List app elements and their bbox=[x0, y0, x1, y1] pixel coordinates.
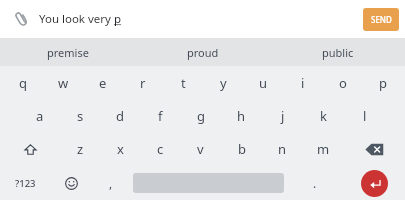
button[interactable]: w bbox=[43, 66, 83, 99]
staticText: x bbox=[117, 140, 124, 158]
button[interactable]: ?123 bbox=[0, 166, 51, 200]
staticText: p bbox=[379, 74, 387, 92]
staticText: SEND bbox=[371, 14, 392, 25]
staticText: m bbox=[317, 140, 330, 158]
staticText: s bbox=[77, 107, 84, 125]
button[interactable]: q bbox=[2, 66, 43, 99]
staticText: , bbox=[109, 175, 113, 191]
button[interactable]: p bbox=[363, 66, 403, 99]
button[interactable]: , bbox=[91, 166, 131, 200]
button[interactable]: i bbox=[283, 66, 323, 99]
staticText: o bbox=[339, 74, 347, 92]
staticText: t bbox=[181, 74, 186, 92]
staticText: . bbox=[313, 175, 317, 191]
button[interactable]: t bbox=[163, 66, 203, 99]
button[interactable]: n bbox=[262, 132, 303, 166]
staticText: p bbox=[114, 11, 122, 27]
staticText: c bbox=[157, 140, 164, 158]
button[interactable]: . bbox=[286, 166, 344, 200]
button[interactable]: v bbox=[180, 132, 221, 166]
staticText: ?123 bbox=[15, 177, 36, 190]
staticText: q bbox=[19, 74, 27, 92]
button[interactable]: a bbox=[20, 99, 60, 132]
staticText: v bbox=[197, 140, 204, 158]
button[interactable]: y bbox=[203, 66, 243, 99]
button[interactable]: z bbox=[60, 132, 100, 166]
staticText: z bbox=[77, 140, 84, 158]
staticText: i bbox=[301, 74, 305, 92]
button[interactable]: b bbox=[221, 132, 262, 166]
button[interactable]: j bbox=[262, 99, 303, 132]
staticText: j bbox=[281, 107, 285, 125]
staticText: b bbox=[238, 140, 246, 158]
button[interactable]: f bbox=[140, 99, 180, 132]
staticText: f bbox=[158, 107, 163, 125]
button[interactable]: public bbox=[270, 38, 405, 66]
button[interactable]: h bbox=[221, 99, 262, 132]
staticText: r bbox=[140, 74, 146, 92]
button[interactable]: premise bbox=[0, 38, 135, 66]
button[interactable]: l bbox=[344, 99, 385, 132]
staticText: premise bbox=[47, 45, 89, 60]
button[interactable]: c bbox=[140, 132, 180, 166]
button[interactable]: d bbox=[100, 99, 140, 132]
staticText: public bbox=[322, 45, 354, 60]
button[interactable]: Backspace bbox=[344, 132, 405, 166]
button[interactable]: m bbox=[303, 132, 344, 166]
staticText: h bbox=[237, 107, 246, 125]
staticText: g bbox=[197, 107, 205, 125]
button[interactable]: r bbox=[123, 66, 163, 99]
button[interactable]: SEND bbox=[363, 8, 399, 31]
staticText: l bbox=[363, 107, 367, 125]
button[interactable]: proud bbox=[135, 38, 270, 66]
staticText: y bbox=[220, 74, 227, 92]
button[interactable]: k bbox=[303, 99, 344, 132]
staticText: u bbox=[259, 74, 268, 92]
staticText: n bbox=[278, 140, 287, 158]
button[interactable]: Enter bbox=[361, 170, 388, 197]
staticText: k bbox=[320, 107, 327, 125]
button[interactable]: g bbox=[180, 99, 221, 132]
staticText: proud bbox=[187, 45, 219, 60]
staticText: d bbox=[116, 107, 124, 125]
staticText: w bbox=[58, 74, 69, 92]
button[interactable]: o bbox=[323, 66, 363, 99]
button[interactable]: x bbox=[100, 132, 140, 166]
staticText: a bbox=[36, 107, 44, 125]
button[interactable]: Shift bbox=[0, 132, 60, 166]
button[interactable]: Emoji bbox=[51, 166, 91, 200]
staticText: e bbox=[99, 74, 107, 92]
button[interactable]: s bbox=[60, 99, 100, 132]
button[interactable]: u bbox=[243, 66, 283, 99]
staticText: You look very bbox=[39, 11, 114, 27]
button[interactable]: e bbox=[83, 66, 123, 99]
button[interactable]: Attach file bbox=[8, 6, 34, 32]
